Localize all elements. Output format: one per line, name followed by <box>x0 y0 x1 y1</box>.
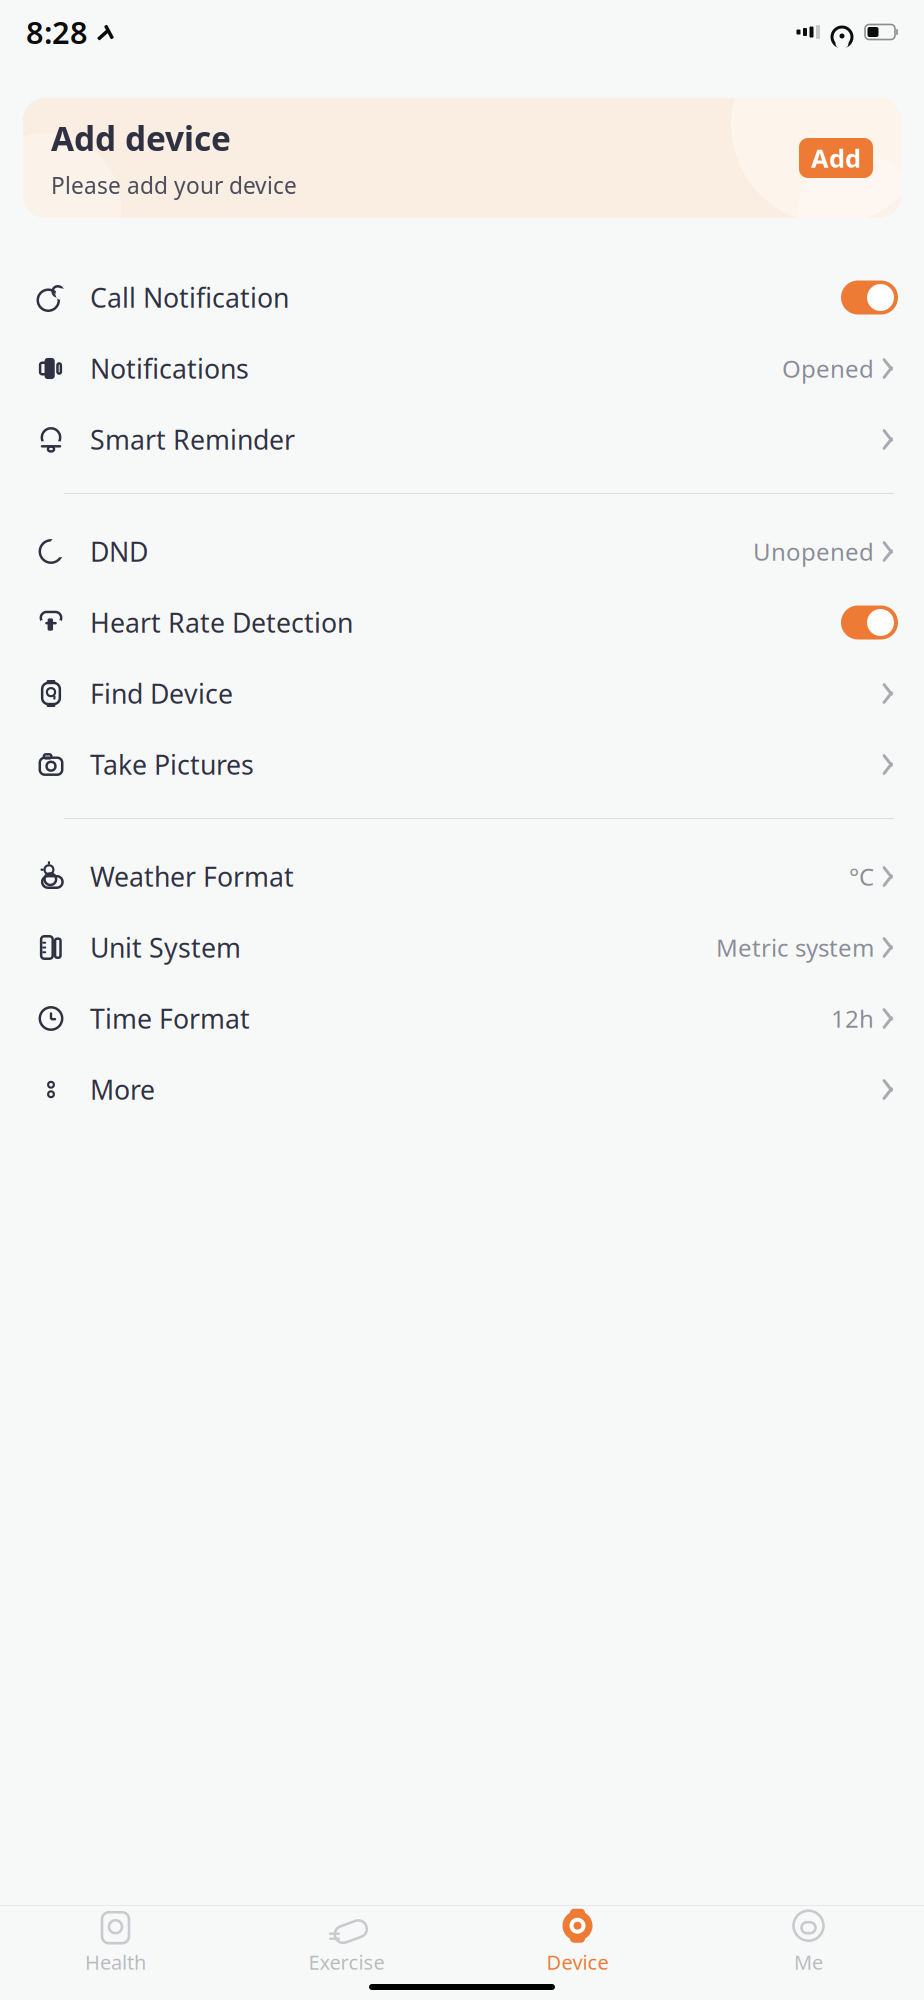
staticText: Add <box>811 141 861 175</box>
staticText: Device <box>546 1949 608 1975</box>
staticText: Exercise <box>308 1949 384 1975</box>
button[interactable]: Health <box>0 1899 231 1979</box>
staticText: Find Device <box>90 676 233 711</box>
staticText: Me <box>794 1949 823 1975</box>
staticText: Heart Rate Detection <box>90 605 353 640</box>
staticText: 8:28 <box>26 12 88 52</box>
staticText: Add device <box>51 116 231 160</box>
staticText: Call Notification <box>90 280 289 315</box>
button[interactable]: Notifications <box>0 333 924 404</box>
button[interactable]: Smart Reminder <box>0 404 924 475</box>
button[interactable]: Time Format <box>0 983 924 1054</box>
staticText: Smart Reminder <box>90 422 295 457</box>
staticText: More <box>90 1072 155 1107</box>
staticText: Health <box>85 1949 146 1975</box>
staticText: DND <box>90 534 148 569</box>
staticText: 12h <box>831 1003 874 1034</box>
button[interactable]: Add <box>799 138 873 178</box>
button[interactable]: Call Notification <box>0 262 924 333</box>
staticText: Please add your device <box>51 170 297 200</box>
staticText: Opened <box>782 353 874 384</box>
staticText: °C <box>849 861 874 892</box>
button[interactable]: Take Pictures <box>0 729 924 800</box>
staticText: Take Pictures <box>90 747 254 782</box>
staticText: Time Format <box>90 1001 250 1036</box>
button[interactable]: DND <box>0 516 924 587</box>
staticText: Unopened <box>753 536 874 567</box>
button[interactable]: More <box>0 1054 924 1125</box>
button[interactable]: Unit System <box>0 912 924 983</box>
button[interactable]: Weather Format <box>0 841 924 912</box>
button[interactable]: Me <box>693 1899 924 1979</box>
button[interactable]: Find Device <box>0 658 924 729</box>
staticText: Unit System <box>90 930 241 965</box>
staticText: Notifications <box>90 351 249 386</box>
button[interactable]: Exercise <box>231 1899 462 1979</box>
button[interactable]: Device <box>462 1899 693 1979</box>
staticText: Weather Format <box>90 859 294 894</box>
button[interactable]: Heart Rate Detection <box>0 587 924 658</box>
staticText: Metric system <box>716 932 874 963</box>
